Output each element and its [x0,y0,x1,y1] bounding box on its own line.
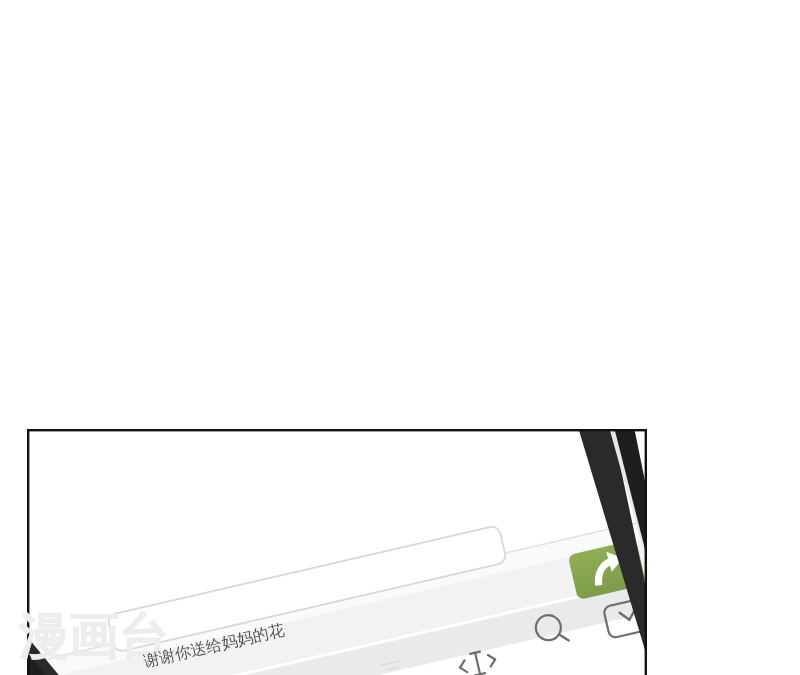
staticText: 漫画台 [18,606,168,669]
staticText: 谢谢你送给妈妈的花 [142,620,286,672]
button[interactable]: 漫画台 [0,0,800,675]
